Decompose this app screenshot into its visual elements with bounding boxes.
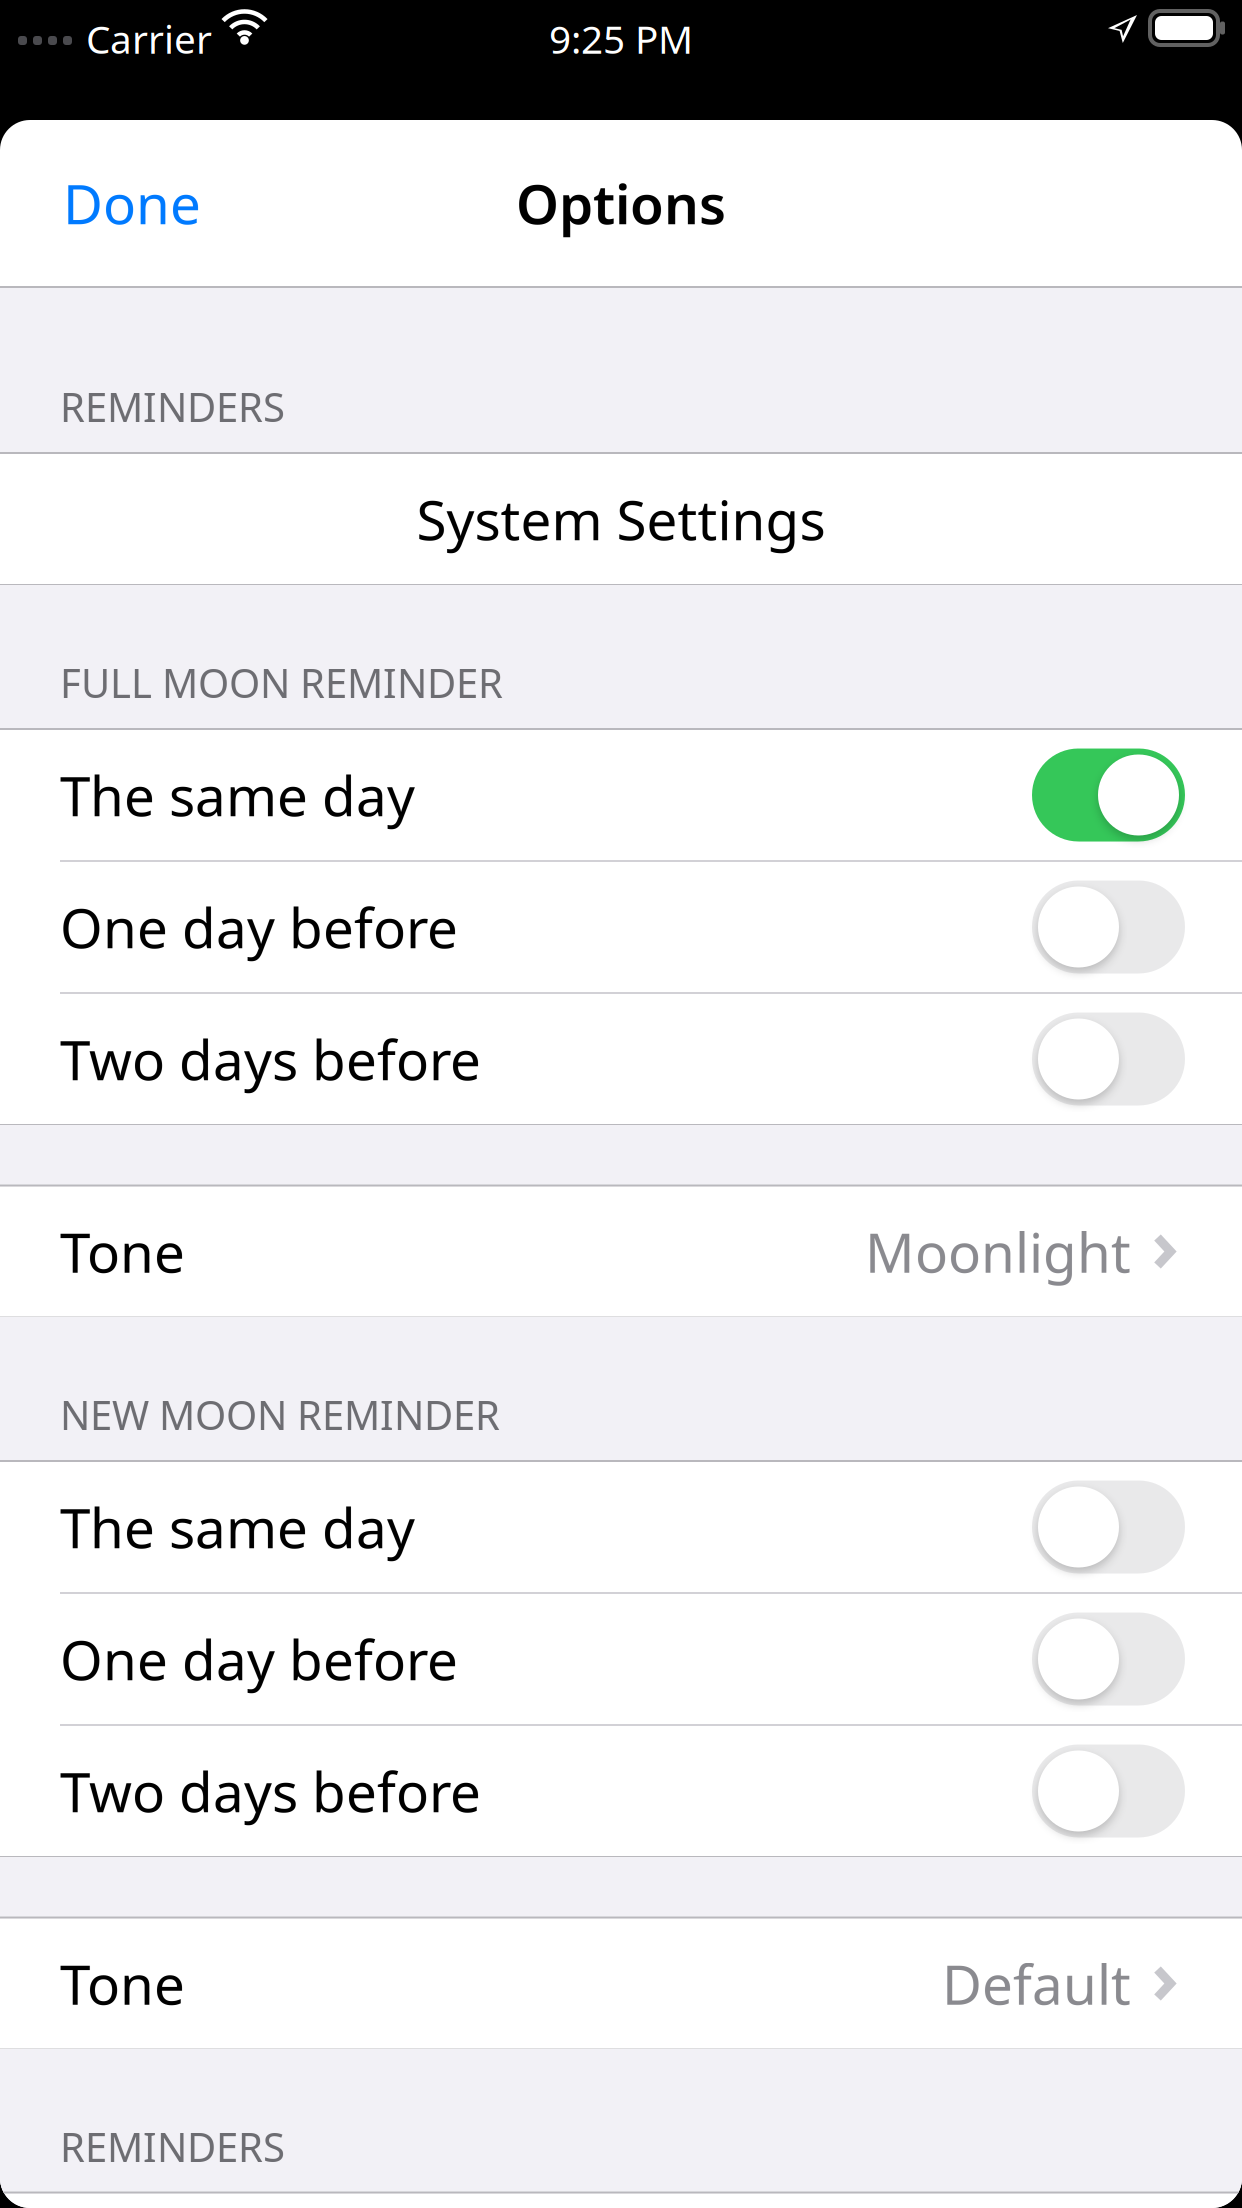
button[interactable]: Two days before (0, 994, 1242, 1124)
button[interactable]: Tone (0, 1186, 1242, 1316)
staticText: NEW MOON REMINDER (60, 1388, 500, 1441)
staticText: The same day (60, 759, 415, 831)
staticText: The same day (60, 1491, 415, 1563)
staticText: Carrier (86, 13, 212, 64)
staticText: Tone (60, 1215, 185, 1288)
staticText: Options (516, 167, 726, 239)
staticText: System Settings (416, 483, 825, 555)
button[interactable]: The same day (0, 730, 1242, 860)
staticText: FULL MOON REMINDER (60, 656, 503, 709)
button[interactable]: Done (0, 125, 264, 281)
button[interactable]: System Settings (0, 454, 1242, 584)
staticText: Tone (60, 1947, 185, 2020)
button[interactable]: Two days before (0, 1726, 1242, 1856)
staticText: One day before (60, 891, 458, 963)
staticText: Two days before (60, 1755, 481, 1827)
staticText: Default (942, 1947, 1131, 2020)
button[interactable]: The same day (0, 1462, 1242, 1592)
button[interactable]: System Settings (0, 2193, 1242, 2208)
staticText: Moonlight (865, 1215, 1131, 1288)
staticText: One day before (60, 1623, 458, 1695)
staticText: Two days before (60, 1023, 481, 1095)
button[interactable]: One day before (0, 862, 1242, 992)
staticText: REMINDERS (60, 380, 285, 433)
staticText: Done (63, 167, 201, 239)
staticText: 9:25 PM (549, 13, 693, 64)
staticText: REMINDERS (60, 2120, 285, 2173)
button[interactable]: Tone (0, 1918, 1242, 2048)
button[interactable]: One day before (0, 1594, 1242, 1724)
